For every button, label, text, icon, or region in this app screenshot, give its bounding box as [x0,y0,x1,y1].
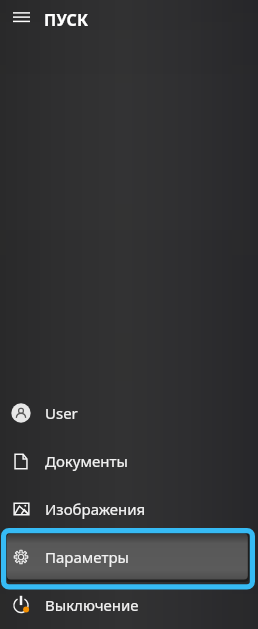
button[interactable]: Выключение [0,581,258,629]
staticText: ПУСК [44,9,89,31]
staticText: Документы [45,451,128,471]
button[interactable]: Изображения [0,485,258,533]
staticText: Параметры [45,547,129,567]
button[interactable]: Документы [0,437,258,485]
staticText: User [45,403,78,423]
staticText: Выключение [45,595,139,615]
button[interactable]: User [0,389,258,437]
staticText: Изображения [45,499,146,519]
button[interactable]: Menu [8,6,34,32]
button[interactable]: Параметры [0,533,258,581]
